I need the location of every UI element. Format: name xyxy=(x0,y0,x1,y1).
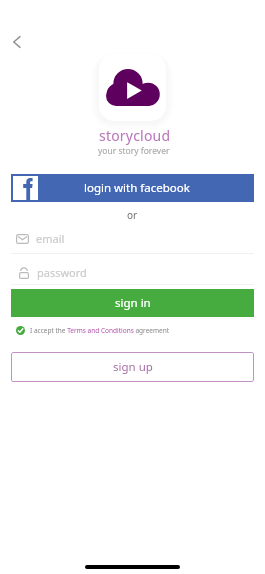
button[interactable]: sign up xyxy=(11,352,254,382)
staticText: password xyxy=(37,265,87,280)
staticText: storycloud xyxy=(99,126,171,145)
button[interactable]: password xyxy=(11,259,254,285)
button[interactable]: I accept the Terms and Conditions agreem… xyxy=(16,324,170,337)
button[interactable]: Back xyxy=(2,28,30,56)
staticText: I accept the Terms and Conditions agreem… xyxy=(30,326,170,335)
button[interactable]: sign in xyxy=(11,289,254,317)
staticText: or xyxy=(127,208,138,222)
staticText: sign up xyxy=(113,359,153,375)
staticText: sign in xyxy=(115,295,151,311)
staticText: your story forever xyxy=(98,145,170,157)
button[interactable]: email xyxy=(11,228,254,254)
staticText: login with facebook xyxy=(84,180,190,196)
staticText: email xyxy=(36,231,65,246)
button[interactable]: login with facebook xyxy=(11,174,254,202)
